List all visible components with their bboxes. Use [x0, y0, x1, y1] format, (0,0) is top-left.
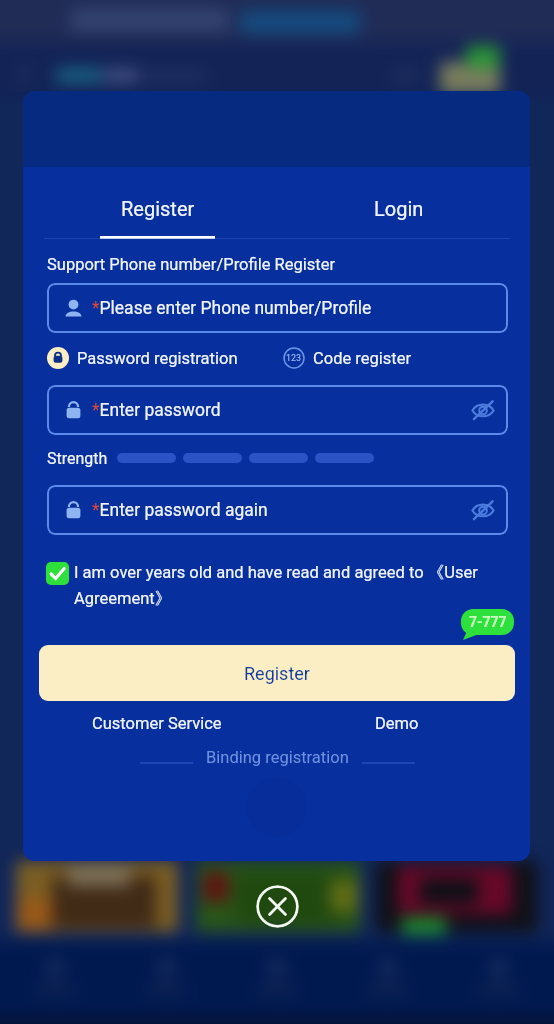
button[interactable]: Close: [256, 885, 299, 928]
staticText: Code register: [313, 349, 412, 368]
staticText: Support Phone number/Profile Register: [47, 255, 335, 274]
button[interactable]: Demo: [365, 708, 429, 739]
staticText: Register: [121, 197, 195, 220]
staticText: Strength: [47, 449, 108, 468]
button[interactable]: Binding registration: [200, 743, 355, 772]
button[interactable]: Login: [277, 167, 530, 239]
button[interactable]: Toggle password visibility: [471, 398, 495, 422]
staticText: I am over years old and have read and ag…: [74, 562, 511, 609]
button[interactable]: *Enter password again: [47, 485, 508, 535]
staticText: 7-777: [469, 614, 507, 630]
button[interactable]: *Enter password: [47, 385, 508, 435]
staticText: Register: [244, 663, 310, 684]
staticText: Customer Service: [92, 714, 222, 733]
button[interactable]: Toggle password visibility: [471, 498, 495, 522]
staticText: Binding registration: [206, 748, 349, 767]
staticText: *Please enter Phone number/Profile: [92, 298, 372, 319]
button[interactable]: Password registration: [47, 347, 238, 369]
button[interactable]: Register: [23, 167, 277, 239]
button[interactable]: *Please enter Phone number/Profile: [47, 283, 508, 333]
button[interactable]: 123: [283, 347, 412, 369]
button[interactable]: Agree to user agreement: [46, 562, 69, 585]
button[interactable]: Customer Service: [82, 708, 232, 739]
staticText: *Enter password again: [92, 500, 268, 521]
staticText: Demo: [375, 714, 419, 733]
staticText: *Enter password: [92, 400, 221, 421]
staticText: Login: [374, 197, 424, 220]
staticText: Password registration: [77, 349, 238, 368]
button[interactable]: Register: [39, 645, 515, 701]
staticText: 123: [286, 353, 302, 364]
